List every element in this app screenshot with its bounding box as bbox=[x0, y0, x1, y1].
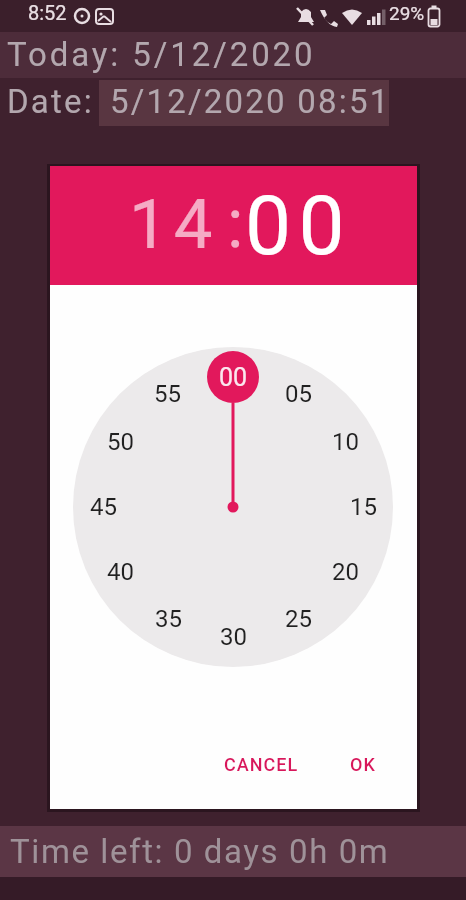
staticText: 29% bbox=[389, 2, 425, 24]
button[interactable]: 50 bbox=[90, 420, 150, 464]
button[interactable]: 10 bbox=[315, 420, 375, 464]
button[interactable]: CANCEL bbox=[215, 742, 307, 786]
staticText: 8:52 bbox=[28, 1, 67, 24]
staticText: 10 bbox=[332, 428, 359, 456]
button[interactable]: 20 bbox=[315, 550, 375, 594]
button[interactable]: 30 bbox=[203, 615, 263, 659]
button[interactable] bbox=[99, 80, 389, 126]
button[interactable]: 05 bbox=[268, 372, 328, 416]
button[interactable]: OK bbox=[330, 742, 396, 786]
staticText: 14 bbox=[129, 184, 219, 265]
staticText: Date: bbox=[7, 82, 94, 121]
button[interactable]: 35 bbox=[138, 597, 198, 641]
staticText: Today: 5/12/2020 bbox=[7, 35, 316, 74]
staticText: 00 bbox=[245, 178, 353, 274]
staticText: 35 bbox=[155, 605, 182, 633]
staticText: 20 bbox=[332, 558, 359, 586]
staticText: 00 bbox=[219, 363, 248, 392]
staticText: 5/12/2020 08:51 bbox=[110, 82, 391, 121]
staticText: 45 bbox=[90, 493, 117, 521]
button[interactable]: 40 bbox=[90, 550, 150, 594]
staticText: CANCEL bbox=[224, 754, 299, 775]
staticText: 50 bbox=[107, 428, 134, 456]
staticText: 40 bbox=[107, 558, 134, 586]
staticText: 15 bbox=[350, 493, 377, 521]
staticText: 25 bbox=[285, 605, 312, 633]
staticText: 05 bbox=[285, 380, 312, 408]
button[interactable]: 55 bbox=[137, 372, 197, 416]
button[interactable]: 00 bbox=[203, 355, 263, 399]
staticText: OK bbox=[350, 754, 376, 775]
staticText: 55 bbox=[154, 380, 181, 408]
staticText: : bbox=[227, 184, 244, 264]
button[interactable]: 45 bbox=[73, 485, 133, 529]
button[interactable]: 25 bbox=[268, 597, 328, 641]
button[interactable]: 15 bbox=[333, 485, 393, 529]
staticText: Time left: 0 days 0h 0m bbox=[10, 832, 390, 871]
button[interactable] bbox=[50, 166, 417, 285]
staticText: 30 bbox=[220, 623, 247, 651]
